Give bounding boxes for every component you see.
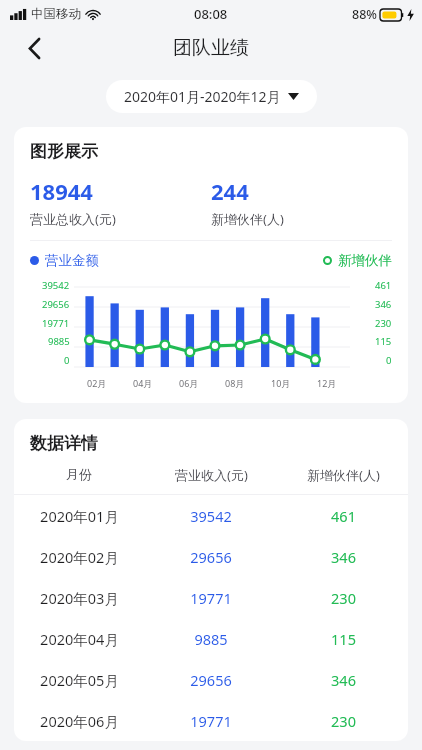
staticText: 营业金额 [45, 252, 99, 269]
staticText: 115 [375, 335, 392, 348]
staticText: 230 [375, 317, 392, 330]
staticText: 06月 [179, 377, 199, 389]
staticText: 115 [331, 629, 356, 649]
staticText: 0 [386, 354, 392, 367]
staticText: 2020年02月 [40, 547, 119, 567]
staticText: 营业总收入(元) [30, 210, 116, 228]
staticText: 230 [331, 711, 356, 731]
staticText: 新增伙伴(人) [211, 210, 284, 228]
staticText: 346 [375, 298, 392, 311]
button[interactable]: 2020年03月 [14, 577, 408, 618]
staticText: 月份 [66, 466, 92, 482]
staticText: 39542 [190, 506, 232, 526]
button[interactable]: 2020年01月-2020年12月 [106, 80, 317, 113]
button[interactable]: 2020年02月 [14, 536, 408, 577]
staticText: 图形展示 [30, 141, 98, 162]
staticText: 04月 [133, 377, 153, 389]
button[interactable]: 2020年01月 [14, 495, 408, 536]
staticText: 88% [352, 6, 377, 23]
staticText: 18944 [30, 176, 93, 206]
button[interactable]: 2020年06月 [14, 700, 408, 741]
staticText: 2020年01月 [40, 506, 119, 526]
staticText: 29656 [190, 670, 232, 690]
staticText: 团队业绩 [173, 36, 249, 60]
staticText: 营业收入(元) [175, 466, 248, 484]
staticText: 12月 [317, 377, 337, 389]
staticText: 346 [331, 670, 356, 690]
staticText: 新增伙伴 [338, 252, 392, 269]
staticText: 244 [211, 176, 249, 206]
staticText: 08:08 [194, 5, 228, 23]
button[interactable]: 2020年04月 [14, 618, 408, 659]
staticText: 0 [64, 354, 70, 367]
staticText: 230 [331, 588, 356, 608]
staticText: 19771 [190, 711, 232, 731]
button[interactable]: Back [14, 28, 54, 68]
staticText: 2020年05月 [40, 670, 119, 690]
staticText: 02月 [87, 377, 107, 389]
staticText: 346 [331, 547, 356, 567]
staticText: 9885 [194, 629, 228, 649]
staticText: 2020年01月-2020年12月 [124, 87, 281, 106]
staticText: 2020年06月 [40, 711, 119, 731]
staticText: 461 [375, 279, 392, 292]
staticText: 数据详情 [30, 433, 98, 454]
staticText: 9885 [48, 335, 70, 348]
staticText: 2020年04月 [40, 629, 119, 649]
staticText: 08月 [225, 377, 245, 389]
staticText: 29656 [42, 298, 70, 311]
staticText: 新增伙伴(人) [307, 466, 380, 484]
staticText: 29656 [190, 547, 232, 567]
staticText: 461 [331, 506, 356, 526]
staticText: 中国移动 [31, 6, 81, 22]
staticText: 2020年03月 [40, 588, 119, 608]
staticText: 19771 [42, 317, 70, 330]
button[interactable]: 2020年05月 [14, 659, 408, 700]
staticText: 10月 [271, 377, 291, 389]
staticText: 19771 [190, 588, 232, 608]
staticText: 39542 [42, 279, 70, 292]
